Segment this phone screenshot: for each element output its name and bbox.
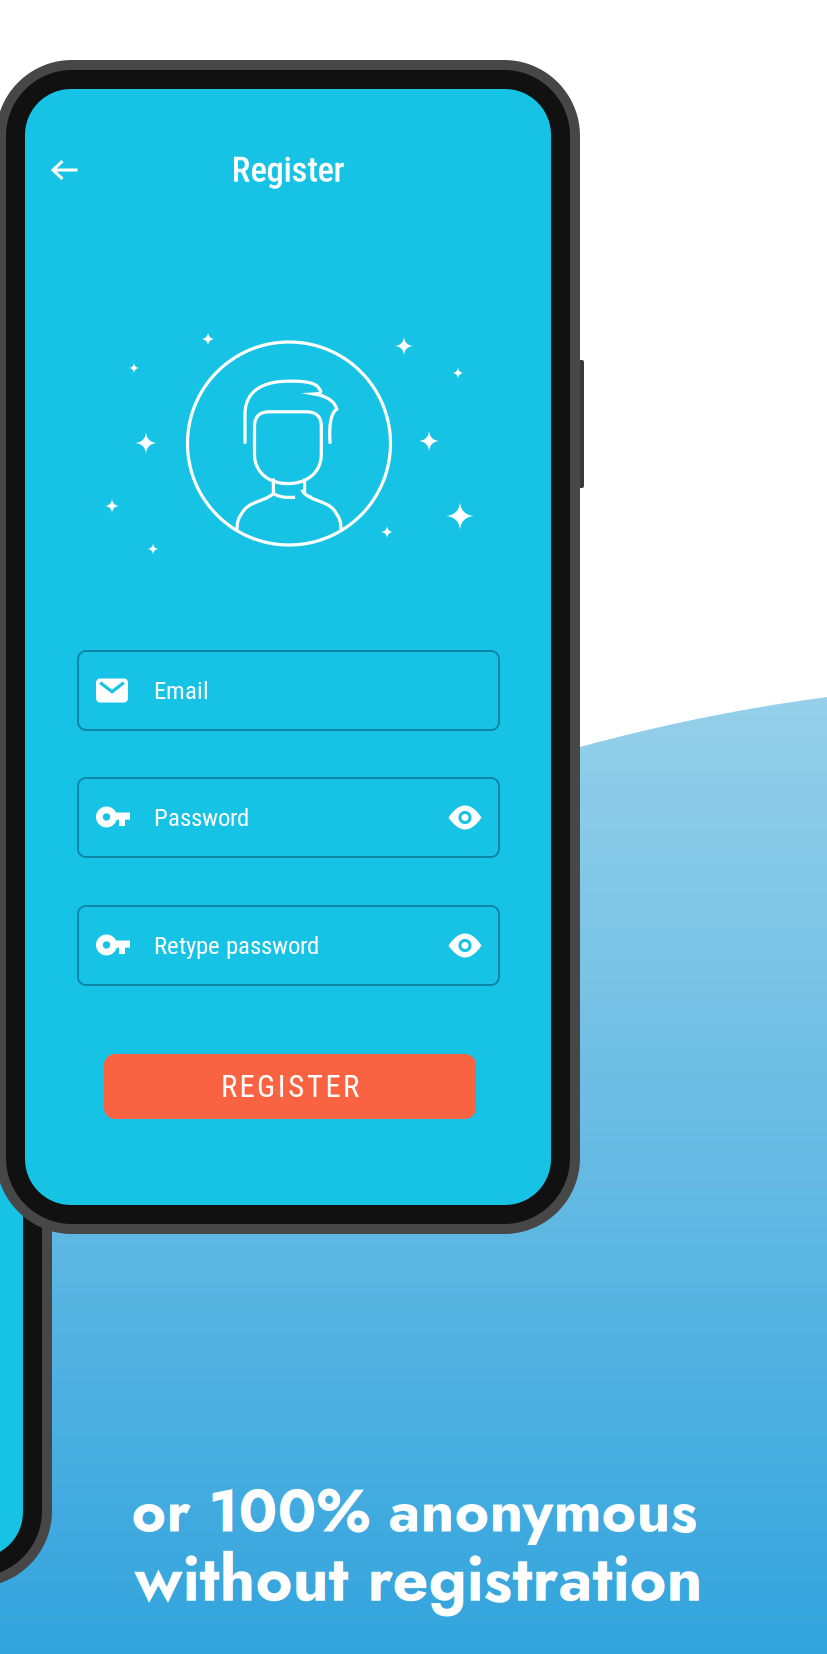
staticText: without registration <box>134 1534 702 1624</box>
staticText: REGISTER <box>221 1068 359 1104</box>
button[interactable]: Show Retype password <box>443 923 487 967</box>
button[interactable]: Back <box>37 142 93 198</box>
staticText: Register <box>231 150 344 190</box>
staticText: or 100% anonymous <box>131 1469 697 1553</box>
button[interactable]: Show Password <box>443 795 487 839</box>
button[interactable]: REGISTER <box>104 1054 476 1119</box>
staticText: Password <box>154 803 249 832</box>
staticText: Email <box>154 676 209 705</box>
staticText: Retype password <box>154 931 319 960</box>
